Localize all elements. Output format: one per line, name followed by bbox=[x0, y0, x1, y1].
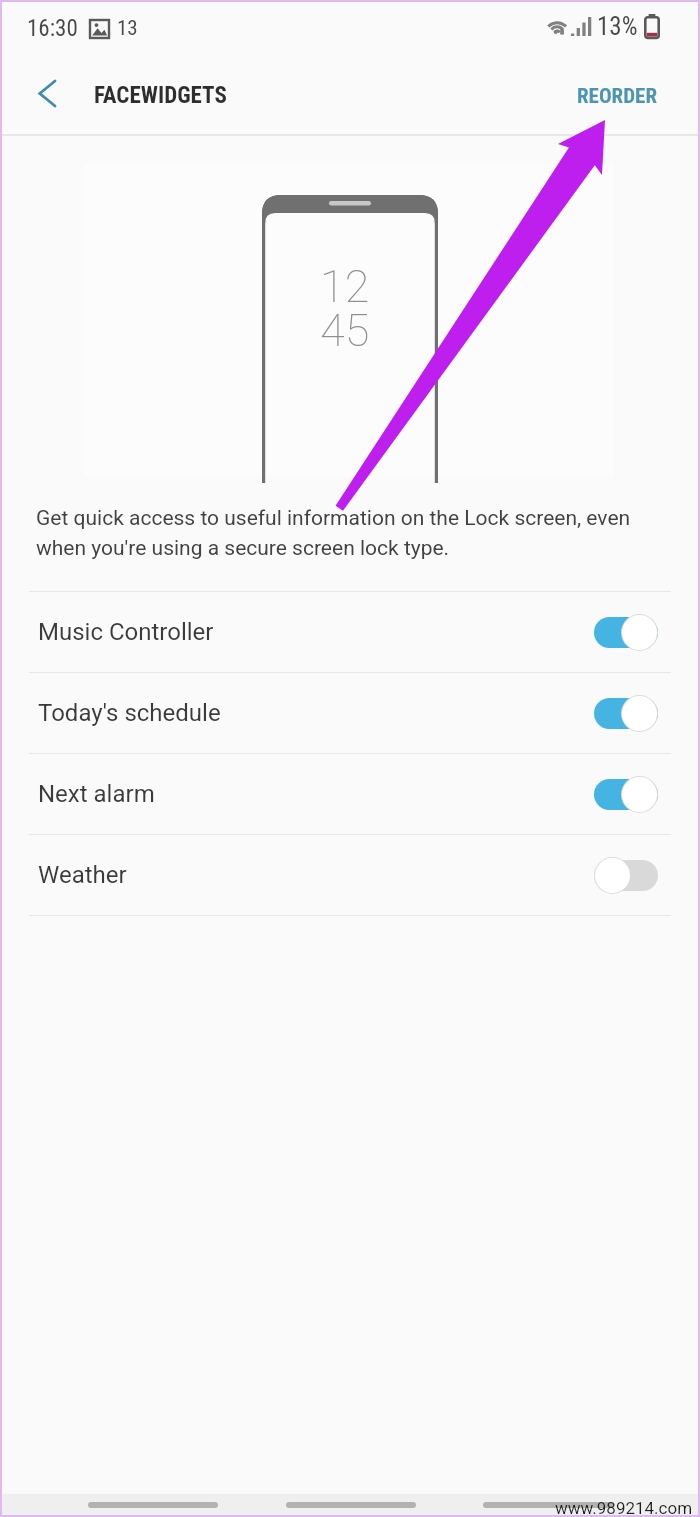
button[interactable]: Music Controller bbox=[2, 592, 698, 672]
staticText: Get quick access to useful information o… bbox=[36, 506, 660, 560]
staticText: 45 bbox=[320, 304, 370, 357]
staticText: Next alarm bbox=[38, 780, 155, 808]
staticText: www.989214.com bbox=[555, 1498, 693, 1517]
staticText: FACEWIDGETS bbox=[94, 82, 227, 109]
staticText: Today's schedule bbox=[38, 699, 221, 727]
staticText: 16:30 bbox=[27, 15, 78, 42]
button[interactable]: Back bbox=[21, 67, 73, 119]
staticText: 12 bbox=[320, 260, 370, 313]
staticText: Music Controller bbox=[38, 618, 214, 646]
staticText: 13% bbox=[597, 12, 638, 41]
button[interactable]: Navigation key bbox=[88, 1502, 218, 1508]
staticText: Weather bbox=[38, 861, 127, 889]
staticText: REORDER bbox=[577, 84, 658, 109]
button[interactable]: Next alarm bbox=[2, 754, 698, 834]
button[interactable]: Weather bbox=[2, 835, 698, 915]
button[interactable]: Navigation key bbox=[286, 1502, 416, 1508]
button[interactable]: Today's schedule bbox=[2, 673, 698, 753]
button[interactable]: REORDER bbox=[549, 66, 686, 127]
button[interactable]: Navigation key bbox=[483, 1502, 613, 1508]
staticText: 13 bbox=[117, 16, 138, 41]
